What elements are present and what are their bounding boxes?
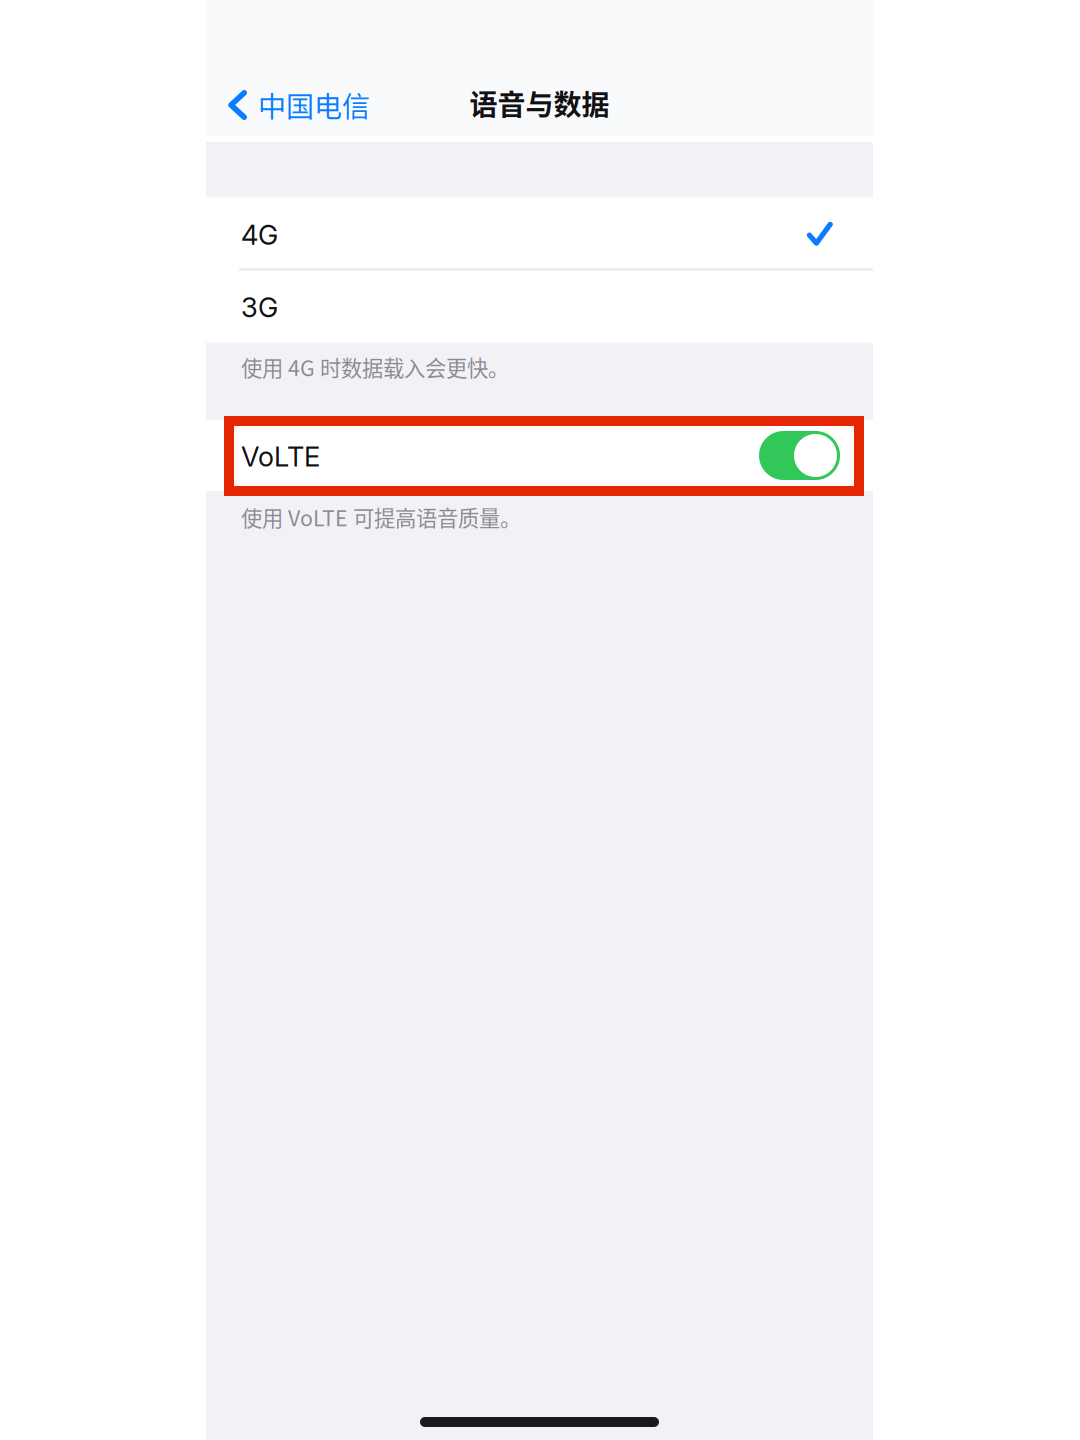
button[interactable]: VoLTE [206,420,873,491]
button[interactable]: 4G [206,197,873,270]
staticText: VoLTE [241,440,320,473]
staticText: 中国电信 [258,85,370,125]
staticText: 语音与数据 [469,83,609,123]
button[interactable]: 中国电信 [206,76,380,134]
staticText: 3G [241,291,278,324]
button[interactable]: 3G [206,270,873,342]
staticText: 使用 4G 时数据载入会更快。 [241,352,509,382]
staticText: 使用 VoLTE 可提高语音质量。 [241,502,521,532]
staticText: 4G [241,218,278,251]
